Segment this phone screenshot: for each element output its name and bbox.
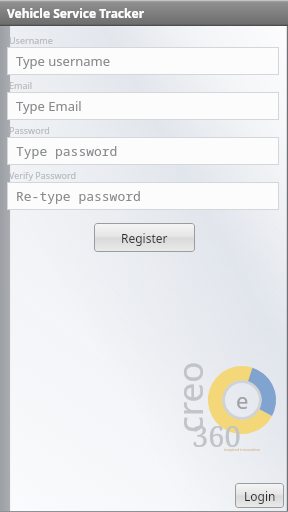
staticText: Login: [244, 488, 276, 504]
staticText: creo: [166, 361, 208, 433]
button[interactable]: Type password: [7, 137, 279, 165]
staticText: Username: [9, 34, 53, 46]
staticText: Password: [9, 124, 50, 136]
staticText: e: [236, 385, 249, 415]
button[interactable]: Re-type password: [7, 182, 279, 210]
button[interactable]: Register: [94, 223, 195, 252]
staticText: inspired innovation: [224, 447, 261, 452]
staticText: Register: [121, 230, 168, 246]
staticText: Type Email: [16, 97, 82, 115]
staticText: Type username: [16, 52, 111, 70]
staticText: Vehicle Service Tracker: [7, 5, 145, 21]
staticText: Verify Password: [9, 169, 77, 181]
staticText: Re-type password: [16, 187, 141, 205]
button[interactable]: Type Email: [7, 92, 279, 120]
staticText: Email: [9, 79, 33, 91]
button[interactable]: Login: [235, 483, 284, 508]
staticText: 360: [192, 416, 241, 455]
button[interactable]: Type username: [7, 47, 279, 75]
staticText: Type password: [16, 142, 118, 160]
